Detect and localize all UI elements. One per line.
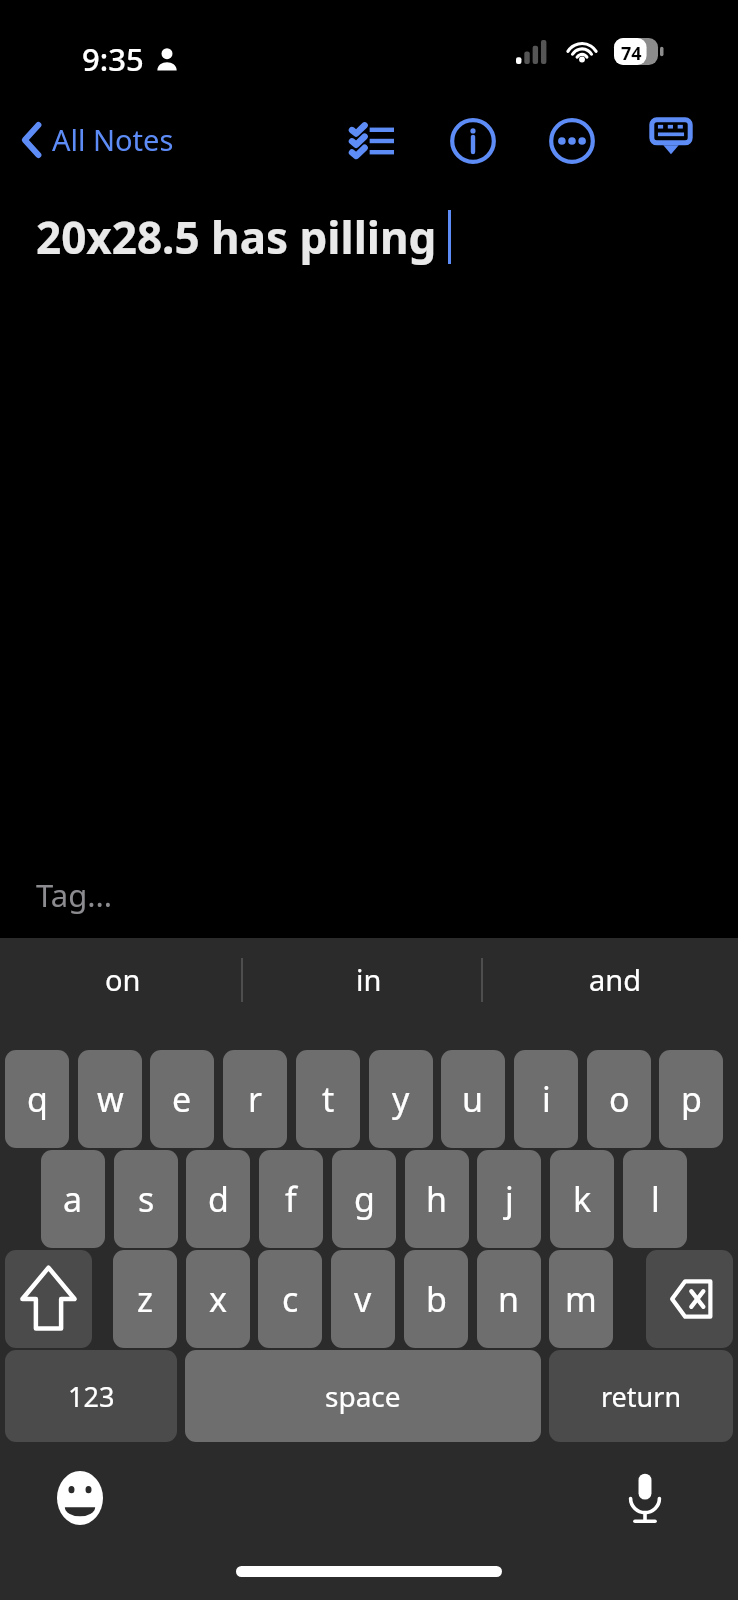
staticText: w bbox=[97, 1076, 124, 1122]
staticText: and bbox=[589, 960, 642, 999]
staticText: d bbox=[208, 1176, 229, 1222]
button[interactable]: Info bbox=[444, 112, 502, 170]
button[interactable]: f bbox=[259, 1150, 323, 1248]
button[interactable]: j bbox=[477, 1150, 541, 1248]
button[interactable]: x bbox=[186, 1250, 250, 1348]
button[interactable]: k bbox=[550, 1150, 614, 1248]
button[interactable]: 123 bbox=[5, 1350, 177, 1442]
staticText: 20x28.5 has pilling bbox=[36, 207, 437, 267]
staticText: t bbox=[322, 1076, 335, 1122]
staticText: o bbox=[609, 1076, 630, 1122]
button[interactable]: i bbox=[514, 1050, 578, 1148]
staticText: 9:35 bbox=[82, 38, 144, 80]
staticText: Tag... bbox=[36, 874, 113, 916]
button[interactable]: u bbox=[441, 1050, 505, 1148]
staticText: return bbox=[601, 1378, 682, 1415]
button[interactable]: space bbox=[185, 1350, 541, 1442]
button[interactable]: r bbox=[223, 1050, 287, 1148]
staticText: a bbox=[63, 1176, 83, 1222]
staticText: 74 bbox=[621, 41, 642, 66]
staticText: v bbox=[354, 1276, 372, 1322]
button[interactable]: a bbox=[41, 1150, 105, 1248]
staticText: s bbox=[138, 1176, 155, 1222]
button[interactable]: on bbox=[0, 940, 246, 1018]
button[interactable]: g bbox=[332, 1150, 396, 1248]
button[interactable]: s bbox=[114, 1150, 178, 1248]
staticText: on bbox=[105, 960, 141, 999]
button[interactable]: w bbox=[78, 1050, 142, 1148]
staticText: 123 bbox=[68, 1378, 115, 1415]
button[interactable]: p bbox=[659, 1050, 723, 1148]
button[interactable]: o bbox=[587, 1050, 651, 1148]
staticText: x bbox=[209, 1276, 227, 1322]
staticText: u bbox=[462, 1076, 484, 1122]
button[interactable]: t bbox=[296, 1050, 360, 1148]
staticText: n bbox=[498, 1276, 520, 1322]
staticText: h bbox=[426, 1176, 448, 1222]
button[interactable]: and bbox=[492, 940, 738, 1018]
button[interactable]: b bbox=[404, 1250, 468, 1348]
button[interactable]: v bbox=[331, 1250, 395, 1348]
button[interactable]: n bbox=[477, 1250, 541, 1348]
button[interactable]: q bbox=[5, 1050, 69, 1148]
button[interactable]: e bbox=[150, 1050, 214, 1148]
staticText: f bbox=[285, 1176, 297, 1222]
button[interactable]: All Notes bbox=[14, 112, 182, 167]
button[interactable]: c bbox=[258, 1250, 322, 1348]
staticText: in bbox=[356, 960, 382, 999]
button[interactable]: d bbox=[186, 1150, 250, 1248]
staticText: space bbox=[325, 1377, 401, 1415]
staticText: b bbox=[426, 1276, 447, 1322]
button[interactable]: l bbox=[623, 1150, 687, 1248]
staticText: c bbox=[282, 1276, 299, 1322]
staticText: e bbox=[172, 1076, 192, 1122]
button[interactable]: Tag... bbox=[36, 874, 113, 916]
staticText: r bbox=[248, 1076, 263, 1122]
button[interactable]: Hide keyboard bbox=[642, 110, 700, 168]
button[interactable]: Checklist bbox=[344, 112, 402, 170]
staticText: All Notes bbox=[52, 120, 174, 159]
button[interactable]: Dictation bbox=[615, 1468, 675, 1528]
button[interactable]: More options bbox=[543, 112, 601, 170]
button[interactable]: Shift bbox=[5, 1250, 92, 1348]
button[interactable]: in bbox=[246, 940, 492, 1018]
button[interactable]: z bbox=[113, 1250, 177, 1348]
staticText: z bbox=[137, 1276, 153, 1322]
staticText: q bbox=[27, 1076, 48, 1122]
staticText: j bbox=[505, 1176, 514, 1222]
button[interactable]: m bbox=[549, 1250, 613, 1348]
staticText: p bbox=[681, 1076, 702, 1122]
button[interactable]: return bbox=[549, 1350, 733, 1442]
button[interactable]: Emoji bbox=[50, 1468, 110, 1528]
staticText: k bbox=[573, 1176, 592, 1222]
staticText: m bbox=[565, 1276, 597, 1322]
button[interactable]: h bbox=[405, 1150, 469, 1248]
button[interactable]: Backspace bbox=[646, 1250, 733, 1348]
staticText: y bbox=[392, 1076, 410, 1122]
staticText: g bbox=[354, 1176, 375, 1222]
staticText: l bbox=[651, 1176, 660, 1222]
staticText: i bbox=[542, 1076, 551, 1122]
button[interactable]: y bbox=[369, 1050, 433, 1148]
